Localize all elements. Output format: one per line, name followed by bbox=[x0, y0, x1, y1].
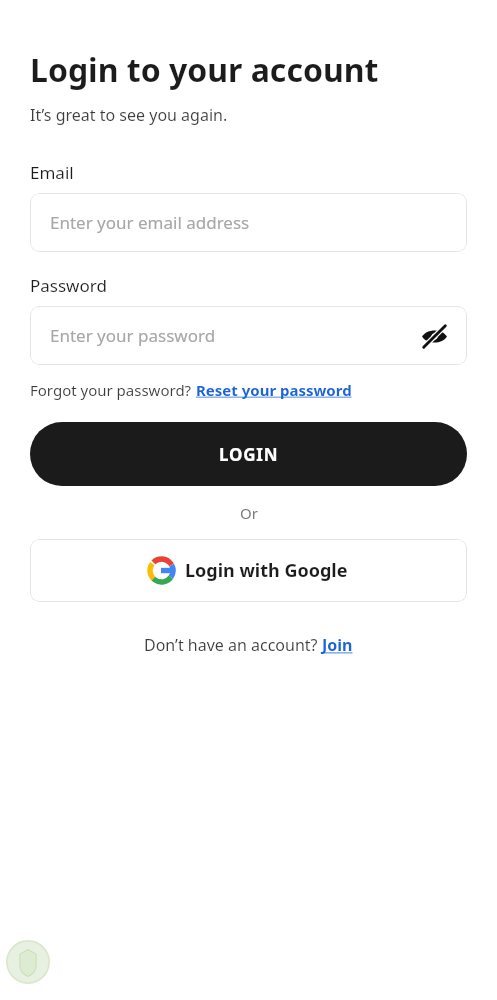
staticText: Email bbox=[30, 161, 74, 184]
button[interactable]: Enter your email address bbox=[30, 193, 467, 252]
staticText: Or bbox=[240, 503, 258, 523]
staticText: Password bbox=[30, 274, 107, 297]
button[interactable]: Login with Google bbox=[30, 539, 467, 602]
staticText: Forgot your password? bbox=[30, 380, 196, 400]
staticText: Join bbox=[322, 634, 353, 656]
button[interactable]: Join bbox=[322, 634, 353, 656]
staticText: Don’t have an account? bbox=[144, 634, 322, 656]
staticText: Reset your password bbox=[196, 380, 352, 400]
button[interactable]: LOGIN bbox=[30, 422, 467, 486]
staticText: Enter your email address bbox=[50, 211, 250, 234]
staticText: LOGIN bbox=[219, 443, 279, 466]
staticText: Login to your account bbox=[30, 48, 379, 92]
staticText: Enter your password bbox=[50, 324, 216, 347]
button[interactable]: Show password bbox=[417, 319, 451, 353]
staticText: It’s great to see you again. bbox=[30, 104, 228, 126]
staticText: Login with Google bbox=[185, 558, 348, 583]
button[interactable]: Reset your password bbox=[196, 380, 352, 400]
button[interactable]: Enter your password bbox=[30, 306, 467, 365]
